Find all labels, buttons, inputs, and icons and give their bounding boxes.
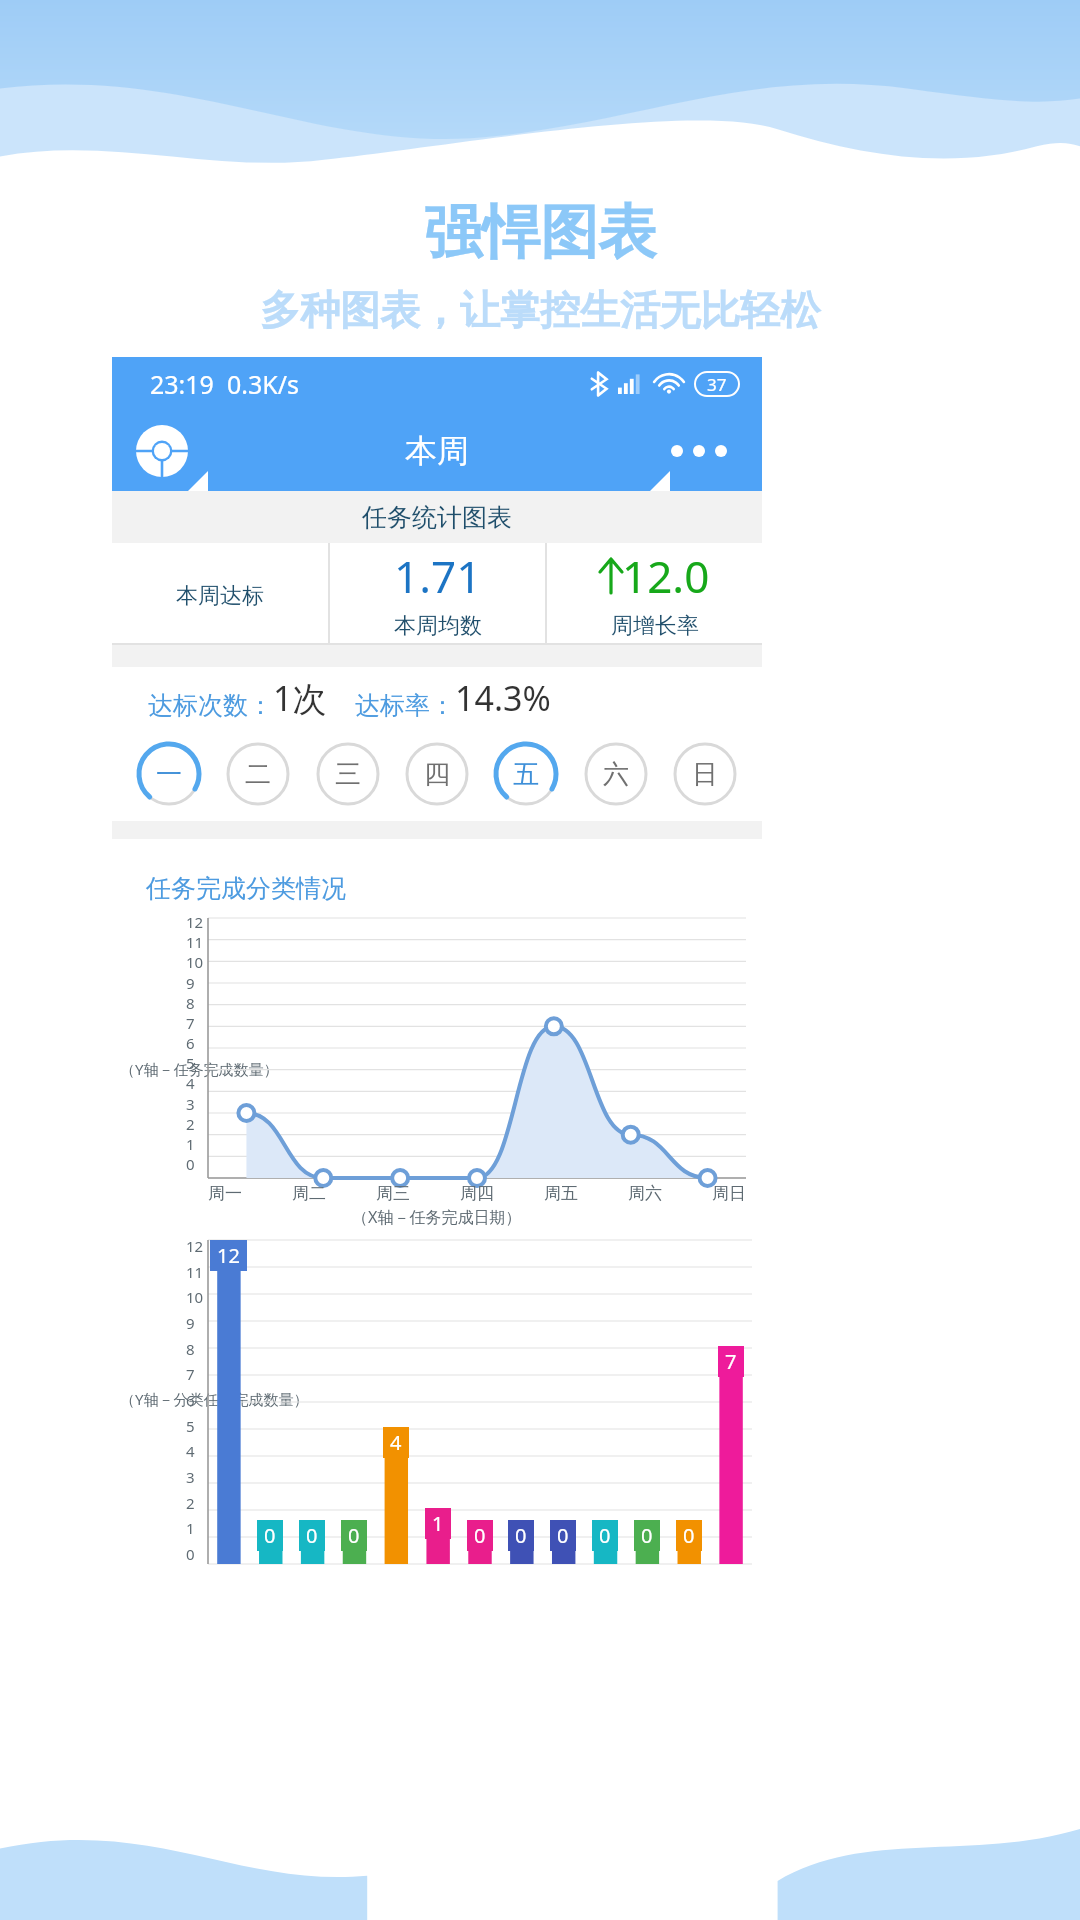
staticText: 四	[424, 758, 450, 791]
staticText: 0	[557, 1522, 569, 1549]
staticText: 0	[186, 1154, 195, 1174]
staticText: 1.71	[394, 546, 482, 606]
staticText: 3	[186, 1467, 195, 1487]
staticText: （Y轴－分类任务完成数量）	[120, 1389, 309, 1409]
staticText: 10	[186, 1287, 204, 1307]
staticText: 周日	[712, 1183, 746, 1204]
staticText: 12	[186, 912, 204, 932]
staticText: 任务统计图表	[362, 502, 512, 533]
staticText: 周增长率	[611, 612, 699, 640]
staticText: 强悍图表	[0, 196, 1080, 269]
staticText: 日	[692, 758, 718, 791]
staticText: 0	[186, 1544, 195, 1564]
staticText: 0	[641, 1522, 653, 1549]
staticText: 1次	[273, 675, 327, 721]
staticText: 9	[186, 973, 195, 993]
staticText: （X轴－任务完成日期）	[352, 1206, 522, 1228]
staticText: 23:19 0.3K/s	[150, 367, 299, 401]
staticText: 37	[707, 373, 727, 396]
staticText: 11	[186, 1262, 204, 1282]
staticText: 0	[474, 1522, 486, 1549]
staticText: 4	[390, 1429, 402, 1456]
staticText: 8	[186, 993, 195, 1013]
staticText: 本周达标	[176, 582, 264, 610]
button[interactable]: 五	[493, 741, 559, 807]
staticText: 12	[186, 1236, 204, 1256]
staticText: 多种图表，让掌控生活无比轻松	[0, 285, 1080, 335]
button[interactable]: 二	[225, 741, 291, 807]
staticText: 7	[186, 1013, 195, 1033]
staticText: 0	[515, 1522, 527, 1549]
staticText: 1	[186, 1134, 195, 1154]
staticText: 6	[186, 1390, 195, 1410]
staticText: 4	[186, 1441, 195, 1461]
staticText: 5	[186, 1416, 195, 1436]
staticText: 0	[306, 1522, 318, 1549]
button[interactable]: More options	[666, 445, 732, 457]
staticText: 7	[725, 1348, 737, 1375]
staticText: 0	[599, 1522, 611, 1549]
staticText: 2	[186, 1114, 195, 1134]
staticText: 周五	[544, 1183, 578, 1204]
staticText: 本周均数	[394, 612, 482, 640]
staticText: 一	[156, 758, 182, 791]
staticText: 周六	[628, 1183, 662, 1204]
staticText: 2	[186, 1493, 195, 1513]
button[interactable]: 六	[583, 741, 649, 807]
staticText: 达标率：	[355, 690, 455, 721]
staticText: 7	[186, 1364, 195, 1384]
staticText: 周四	[460, 1183, 494, 1204]
staticText: 周三	[376, 1183, 410, 1204]
staticText: 0	[683, 1522, 695, 1549]
staticText: 周二	[292, 1183, 326, 1204]
button[interactable]: 一	[136, 741, 202, 807]
staticText: 9	[186, 1313, 195, 1333]
staticText: 任务完成分类情况	[146, 873, 346, 904]
button[interactable]: App logo menu	[134, 423, 190, 479]
staticText: 二	[245, 758, 271, 791]
button[interactable]: 日	[672, 741, 738, 807]
staticText: 12	[217, 1242, 240, 1269]
staticText: 6	[186, 1033, 195, 1053]
button[interactable]: 12.0	[547, 543, 762, 643]
staticText: 六	[603, 758, 629, 791]
staticText: 8	[186, 1339, 195, 1359]
staticText: 14.3%	[455, 675, 551, 721]
staticText: 1	[186, 1518, 195, 1538]
staticText: （Y轴－任务完成数量）	[120, 1059, 279, 1079]
staticText: 10	[186, 952, 204, 972]
staticText: 1	[432, 1510, 444, 1537]
button[interactable]: 三	[315, 741, 381, 807]
staticText: 3	[186, 1094, 195, 1114]
button[interactable]: 本周达标	[112, 543, 328, 643]
staticText: 12.0	[622, 546, 710, 606]
staticText: 达标次数：	[148, 690, 273, 721]
staticText: 五	[513, 758, 539, 791]
staticText: 本周	[405, 431, 469, 471]
staticText: 11	[186, 932, 204, 952]
staticText: 0	[348, 1522, 360, 1549]
staticText: 5	[186, 1053, 195, 1073]
button[interactable]: 四	[404, 741, 470, 807]
staticText: 4	[186, 1073, 195, 1093]
staticText: 三	[335, 758, 361, 791]
staticText: 周一	[208, 1183, 242, 1204]
button[interactable]: 1.71	[330, 543, 545, 643]
staticText: 0	[264, 1522, 276, 1549]
